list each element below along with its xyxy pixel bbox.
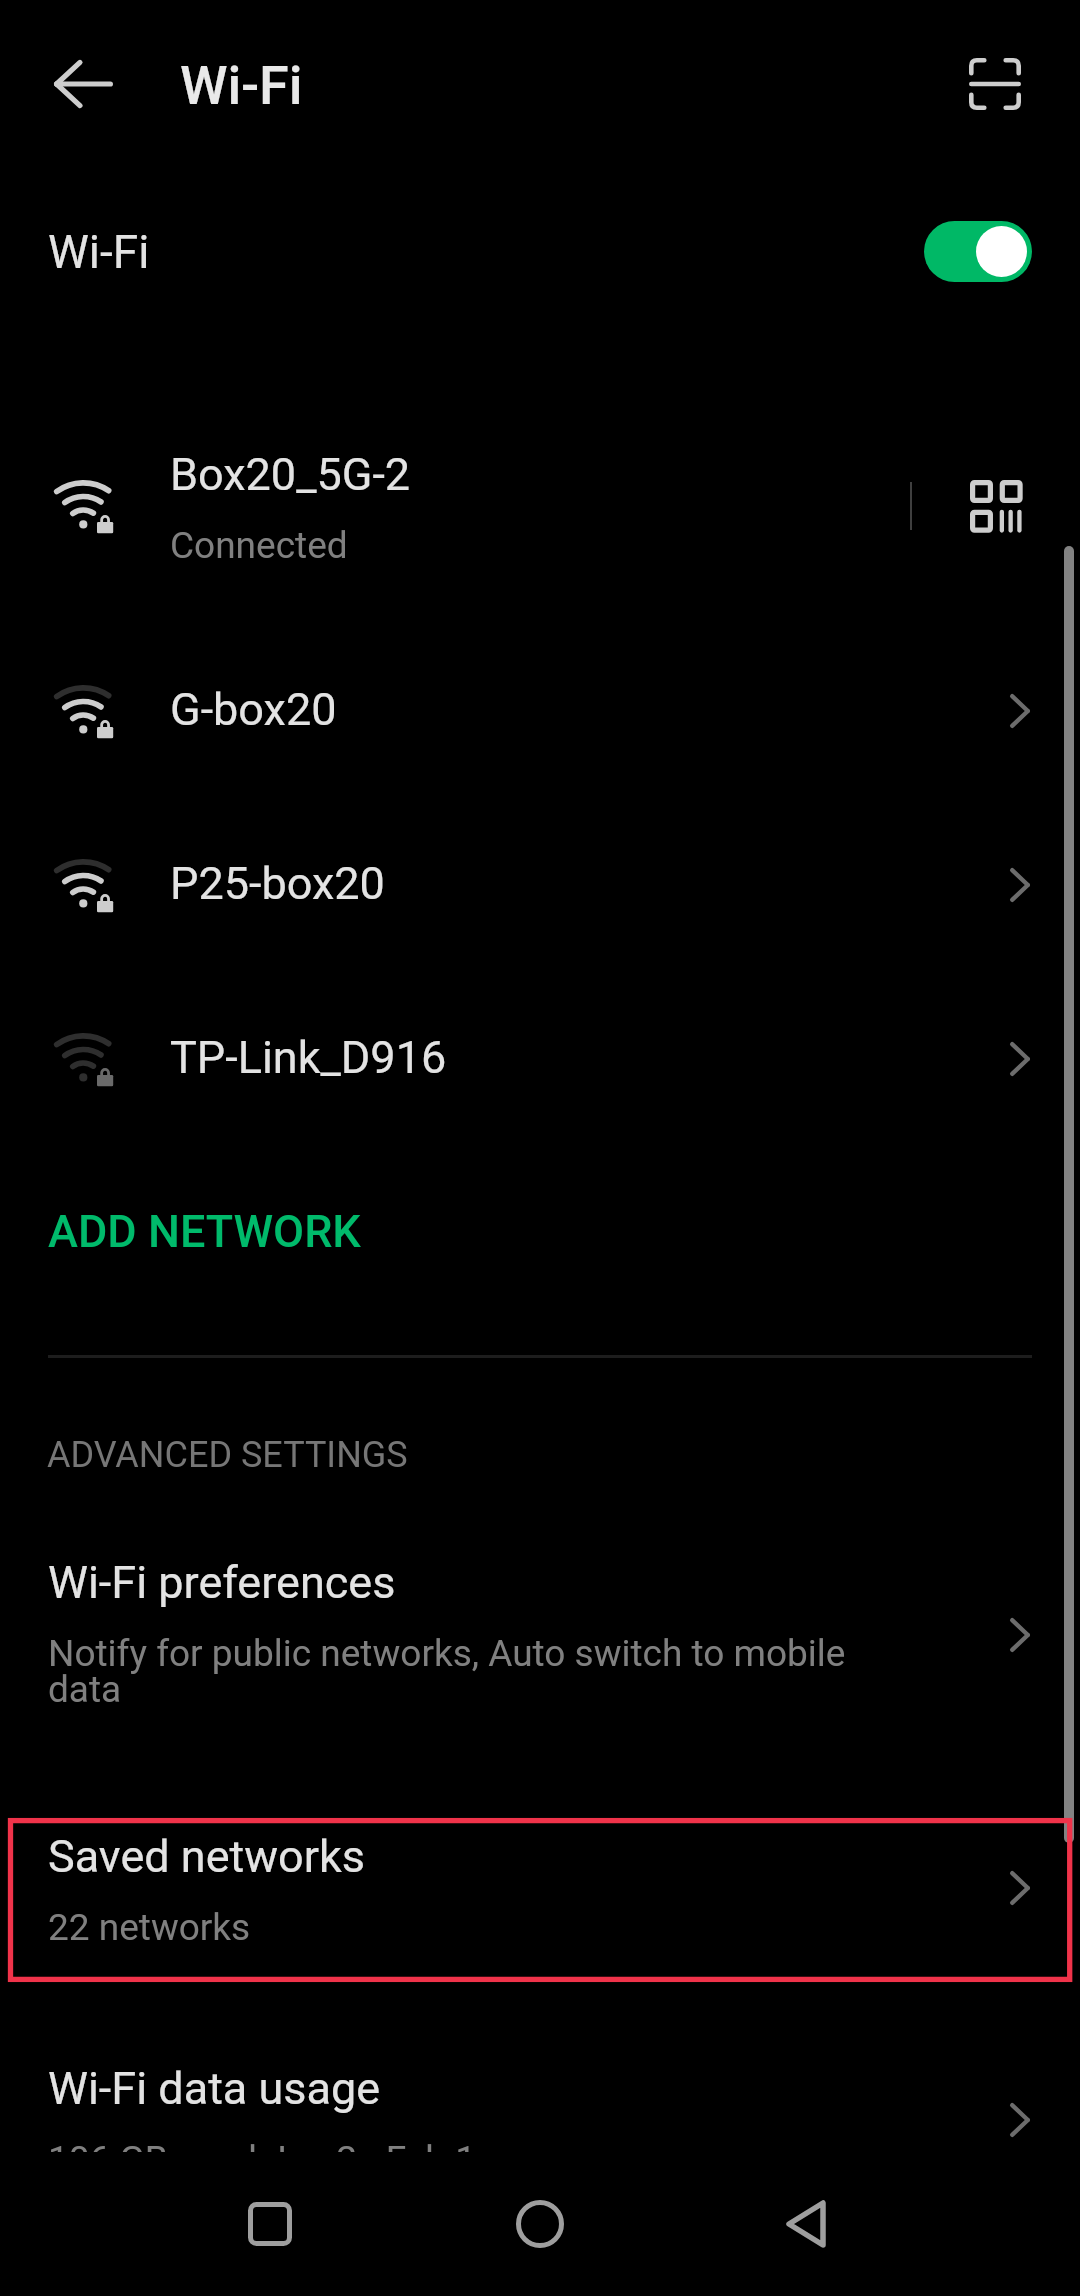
staticText: 22 networks (48, 1906, 251, 1949)
staticText: TP-Link_D916 (170, 1031, 447, 1084)
button[interactable]: TP-Link_D916 (0, 973, 1080, 1147)
button[interactable]: Wi-Fi data usage (0, 2020, 1080, 2220)
staticText: 106 GB used Jan 2 - Feb 1 (48, 2138, 477, 2181)
staticText: G-box20 (170, 683, 337, 736)
button[interactable]: Back (746, 2164, 866, 2284)
button[interactable]: Back (54, 60, 113, 108)
staticText: Box20_5G-2 (170, 448, 411, 501)
staticText: Saved networks (48, 1830, 365, 1883)
button[interactable]: G-box20 (0, 625, 1080, 799)
staticText: ADVANCED SETTINGS (47, 1434, 408, 1476)
button[interactable]: Wi-Fi preferences (0, 1520, 1080, 1750)
button[interactable]: Wi-Fi (0, 192, 1080, 312)
staticText: ADD NETWORK (48, 1205, 361, 1258)
button[interactable]: P25-box20 (0, 799, 1080, 973)
staticText: Wi-Fi (48, 225, 150, 279)
button[interactable]: Recent apps (210, 2164, 330, 2284)
button[interactable]: Box20_5G-2 (0, 420, 1080, 610)
staticText: Connected (170, 524, 348, 567)
button[interactable]: Share Wi-Fi network (970, 480, 1022, 532)
staticText: Wi-Fi data usage (48, 2062, 381, 2115)
button[interactable]: ADD NETWORK (0, 1160, 1080, 1290)
button[interactable]: Home (480, 2164, 600, 2284)
staticText: P25-box20 (170, 857, 385, 910)
button[interactable]: Saved networks (0, 1790, 1080, 1990)
staticText: Wi-Fi (180, 54, 303, 117)
staticText: Wi-Fi preferences (48, 1556, 396, 1609)
staticText: Notify for public networks, Auto switch … (48, 1632, 878, 1711)
button[interactable]: Scan QR code (969, 58, 1021, 110)
